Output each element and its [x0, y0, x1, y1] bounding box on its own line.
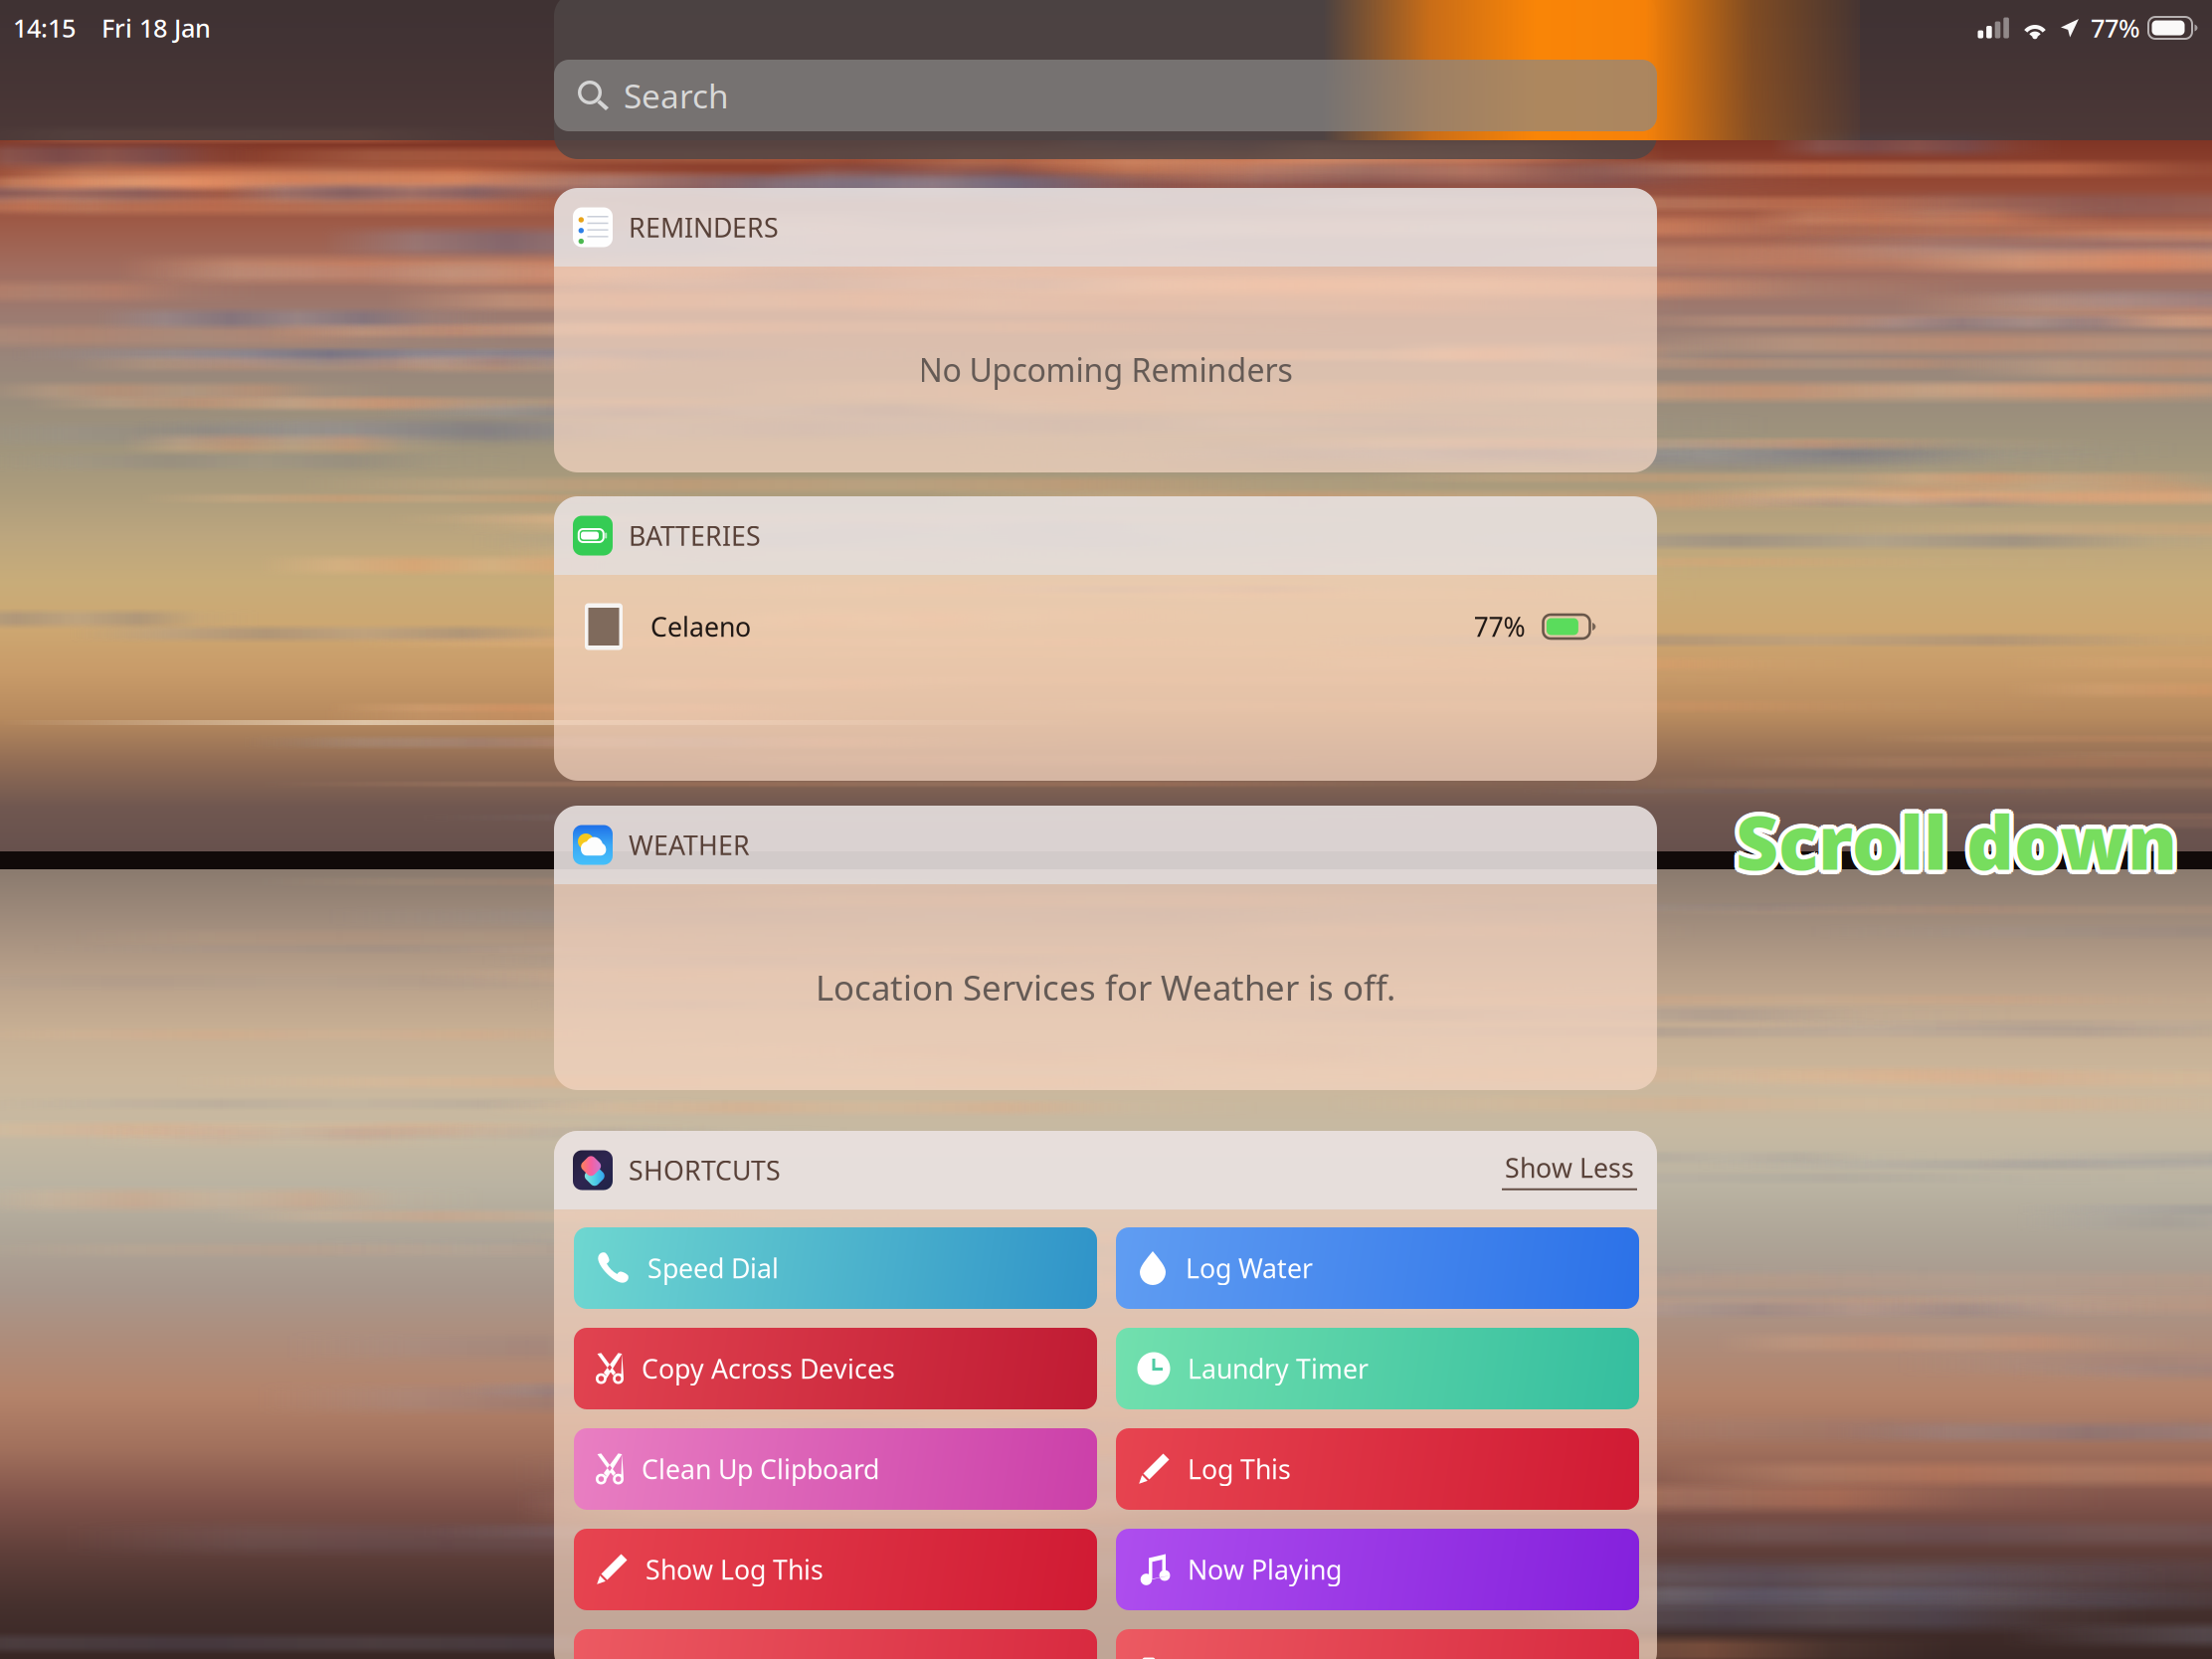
staticText: Scroll down — [1738, 788, 2179, 886]
button[interactable]: Speed Dial — [574, 1227, 1097, 1309]
button[interactable]: Log This — [1116, 1428, 1639, 1510]
staticText: Scroll down — [1736, 789, 2177, 888]
staticText: SHORTCUTS — [629, 1153, 781, 1188]
staticText: Scroll down — [1739, 790, 2181, 888]
button[interactable]: Log Water — [1116, 1227, 1639, 1309]
staticText: Show Log This — [645, 1552, 824, 1587]
staticText: Clean Up Clipboard — [642, 1451, 879, 1487]
staticText: Speed Dial — [647, 1251, 779, 1286]
staticText: 77% — [2091, 11, 2140, 45]
staticText: Scroll down — [1733, 788, 2175, 886]
staticText: Fri 18 Jan — [101, 11, 211, 45]
staticText: Scroll down — [1732, 790, 2173, 888]
button[interactable]: Scan QR code — [1116, 1629, 1639, 1659]
staticText: No Upcoming Reminders — [919, 348, 1292, 391]
button[interactable]: Clean Up Clipboard — [574, 1428, 1097, 1510]
staticText: Scroll down — [1740, 792, 2182, 890]
staticText: Scroll down — [1738, 796, 2179, 894]
button[interactable]: Search — [554, 60, 1657, 131]
staticText: Scroll down — [1736, 796, 2177, 895]
button[interactable]: Copy Across Devices — [574, 1328, 1097, 1409]
staticText: Calculate tip — [644, 1652, 798, 1659]
staticText: Scroll down — [1736, 794, 2177, 893]
staticText: REMINDERS — [629, 210, 779, 245]
button[interactable]: Show Less — [1496, 1144, 1643, 1196]
staticText: Log Water — [1186, 1251, 1313, 1286]
staticText: Now Playing — [1188, 1552, 1342, 1587]
staticText: 77% — [1474, 609, 1525, 644]
button[interactable]: Laundry Timer — [1116, 1328, 1639, 1409]
staticText: Scroll down — [1731, 792, 2173, 890]
staticText: Scan QR code — [1188, 1652, 1358, 1659]
staticText: BATTERIES — [629, 518, 761, 553]
staticText: Scroll down — [1739, 794, 2181, 893]
button[interactable]: $ — [574, 1629, 1097, 1659]
staticText: Copy Across Devices — [642, 1351, 895, 1386]
staticText: Laundry Timer — [1188, 1351, 1369, 1386]
staticText: Scroll down — [1733, 796, 2175, 894]
staticText: Scroll down — [1736, 787, 2177, 886]
staticText: Scroll down — [1733, 792, 2175, 890]
staticText: 14:15 — [13, 11, 76, 45]
staticText: Log This — [1188, 1451, 1291, 1487]
staticText: Scroll down — [1738, 792, 2180, 890]
staticText: Celaeno — [650, 609, 751, 644]
staticText: Location Services for Weather is off. — [816, 964, 1395, 1010]
staticText: Show Less — [1505, 1150, 1634, 1185]
button[interactable]: Now Playing — [1116, 1529, 1639, 1610]
button[interactable]: Show Log This — [574, 1529, 1097, 1610]
staticText: Scroll down — [1732, 794, 2173, 893]
staticText: Scroll down — [1736, 792, 2177, 890]
staticText: Search — [624, 74, 729, 118]
staticText: WEATHER — [629, 827, 750, 863]
